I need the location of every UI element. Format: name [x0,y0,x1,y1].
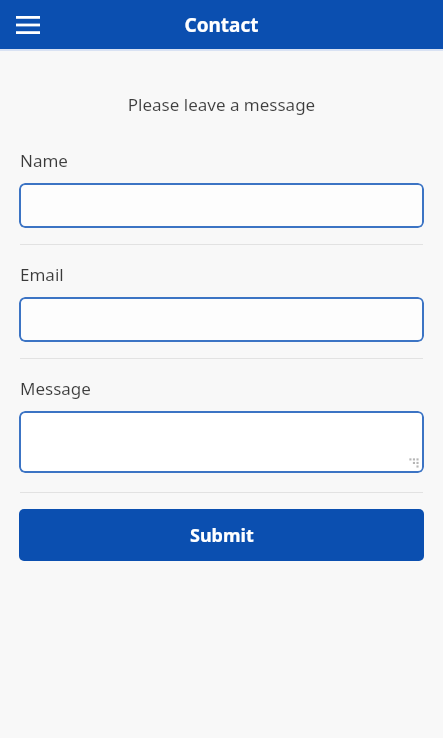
staticText: Email [20,263,64,286]
staticText: Please leave a message [0,93,443,116]
staticText: Contact [184,12,259,38]
staticText: Message [20,377,91,400]
button[interactable]: Text input field [19,297,424,342]
button[interactable]: Message text area [19,411,424,473]
staticText: Name [20,149,68,172]
button[interactable]: Submit [19,509,424,561]
button[interactable]: Text input field [19,183,424,228]
staticText: Submit [190,523,254,548]
button[interactable]: Open navigation menu [8,5,48,45]
